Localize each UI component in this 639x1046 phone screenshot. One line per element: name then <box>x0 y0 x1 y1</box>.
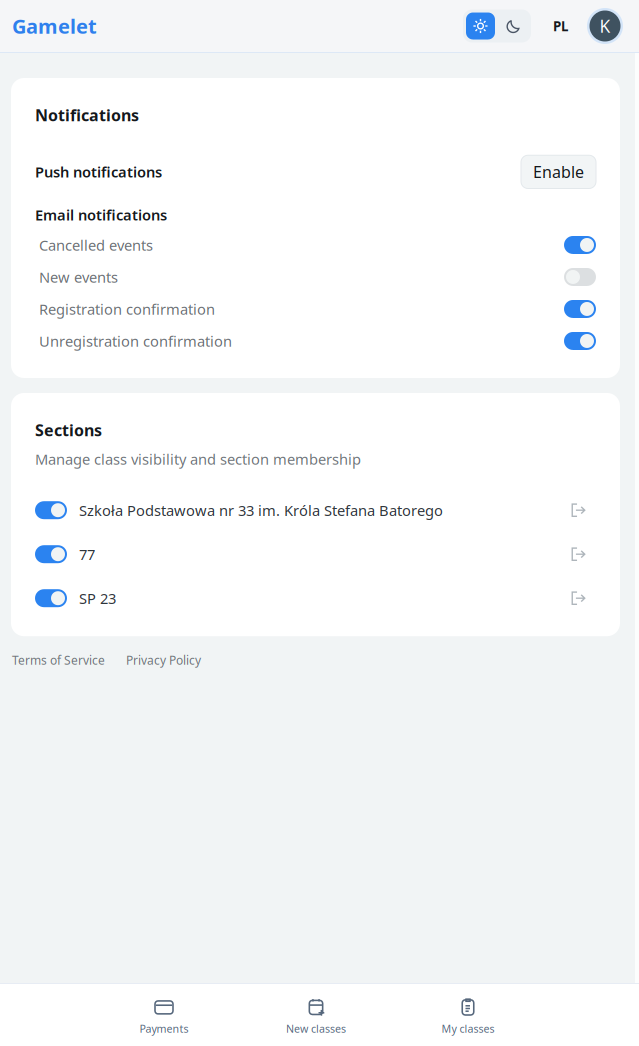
button[interactable]: My classes <box>441 984 494 1046</box>
staticText: Registration confirmation <box>39 299 215 319</box>
button[interactable]: Leave Szkoła Podstawowa nr 33 im. Króla … <box>563 495 593 525</box>
button[interactable]: Light appearance <box>466 12 495 39</box>
button[interactable]: Dark appearance <box>499 12 528 39</box>
button[interactable]: Terms of Service <box>12 652 105 668</box>
button[interactable]: Visibility for SP 23 <box>35 581 67 615</box>
button[interactable]: Cancelled events <box>35 229 596 261</box>
staticText: K <box>599 14 610 37</box>
staticText: New events <box>39 267 118 287</box>
staticText: Cancelled events <box>39 235 153 255</box>
staticText: My classes <box>441 1021 494 1036</box>
staticText: Szkoła Podstawowa nr 33 im. Króla Stefan… <box>79 500 443 520</box>
staticText: Email notifications <box>35 205 167 224</box>
button[interactable]: Gamelet <box>12 13 97 39</box>
button[interactable]: Leave SP 23 <box>563 583 593 613</box>
button[interactable]: PL <box>539 8 582 44</box>
button[interactable]: Payments <box>139 984 188 1046</box>
button[interactable]: New events <box>35 261 596 293</box>
staticText: Enable <box>533 161 584 182</box>
staticText: PL <box>553 17 568 35</box>
button[interactable]: Account menu <box>587 8 623 44</box>
staticText: New classes <box>286 1021 346 1036</box>
button[interactable]: Visibility for Szkoła Podstawowa nr 33 i… <box>35 493 67 527</box>
staticText: Privacy Policy <box>126 652 201 668</box>
staticText: Gamelet <box>12 13 97 39</box>
staticText: Terms of Service <box>12 652 105 668</box>
staticText: Payments <box>139 1021 188 1036</box>
staticText: Manage class visibility and section memb… <box>35 449 361 469</box>
staticText: Push notifications <box>35 162 162 182</box>
button[interactable]: Visibility for 77 <box>35 537 67 571</box>
button[interactable]: New classes <box>286 984 346 1046</box>
button[interactable]: Enable <box>521 155 596 188</box>
button[interactable]: Privacy Policy <box>126 652 201 668</box>
staticText: Notifications <box>35 104 139 126</box>
button[interactable]: Registration confirmation <box>35 293 596 325</box>
staticText: 77 <box>79 544 95 564</box>
button[interactable]: Leave 77 <box>563 539 593 569</box>
staticText: Sections <box>35 419 102 441</box>
staticText: SP 23 <box>79 588 116 608</box>
button[interactable]: Unregistration confirmation <box>35 325 596 357</box>
staticText: Unregistration confirmation <box>39 331 232 351</box>
